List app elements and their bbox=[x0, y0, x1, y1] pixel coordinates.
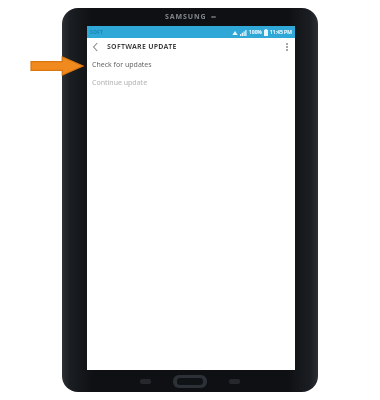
other: Pointer to Check for updates bbox=[31, 56, 83, 76]
button[interactable]: More options bbox=[279, 39, 295, 55]
button[interactable]: Check for updates bbox=[87, 56, 295, 74]
button[interactable]: Recents bbox=[140, 379, 151, 384]
button[interactable]: Back bbox=[87, 39, 103, 55]
staticText: Check for updates bbox=[92, 60, 152, 70]
button[interactable]: Home bbox=[173, 375, 207, 388]
button[interactable]: Back bbox=[229, 379, 240, 384]
staticText: SOFT bbox=[90, 29, 104, 36]
staticText: 11:45 PM bbox=[270, 29, 292, 36]
staticText: SAMSUNG bbox=[165, 12, 207, 22]
staticText: 100% bbox=[249, 29, 262, 36]
button[interactable]: Continue update bbox=[87, 74, 295, 92]
staticText: Continue update bbox=[92, 78, 148, 88]
staticText: SOFTWARE UPDATE bbox=[107, 42, 177, 52]
